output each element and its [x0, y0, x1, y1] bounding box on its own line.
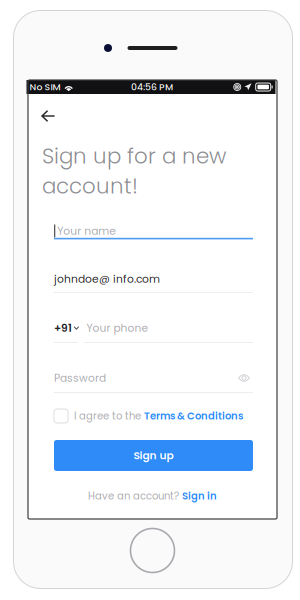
button[interactable]: Sign in — [182, 489, 217, 503]
button[interactable]: Sign up — [54, 440, 253, 471]
staticText: No SIM — [29, 80, 60, 94]
staticText: Your phone — [86, 320, 148, 335]
staticText: Sign in — [182, 489, 217, 503]
button[interactable]: Show password — [235, 371, 253, 385]
staticText: 04:56 PM — [131, 80, 173, 94]
staticText: Your name — [57, 223, 116, 238]
staticText: +91 — [54, 320, 72, 335]
staticText: Terms & Conditions — [144, 409, 243, 423]
staticText: Sign up — [133, 448, 173, 463]
staticText: Have an account? — [88, 489, 182, 503]
staticText: Sign up for a new account! — [42, 141, 226, 201]
staticText: I agree to the — [74, 409, 144, 423]
button[interactable]: Back — [31, 101, 65, 131]
button[interactable]: I agree to the — [54, 408, 253, 424]
staticText: johndoe@ info.com — [54, 271, 160, 286]
staticText: Password — [54, 370, 106, 385]
